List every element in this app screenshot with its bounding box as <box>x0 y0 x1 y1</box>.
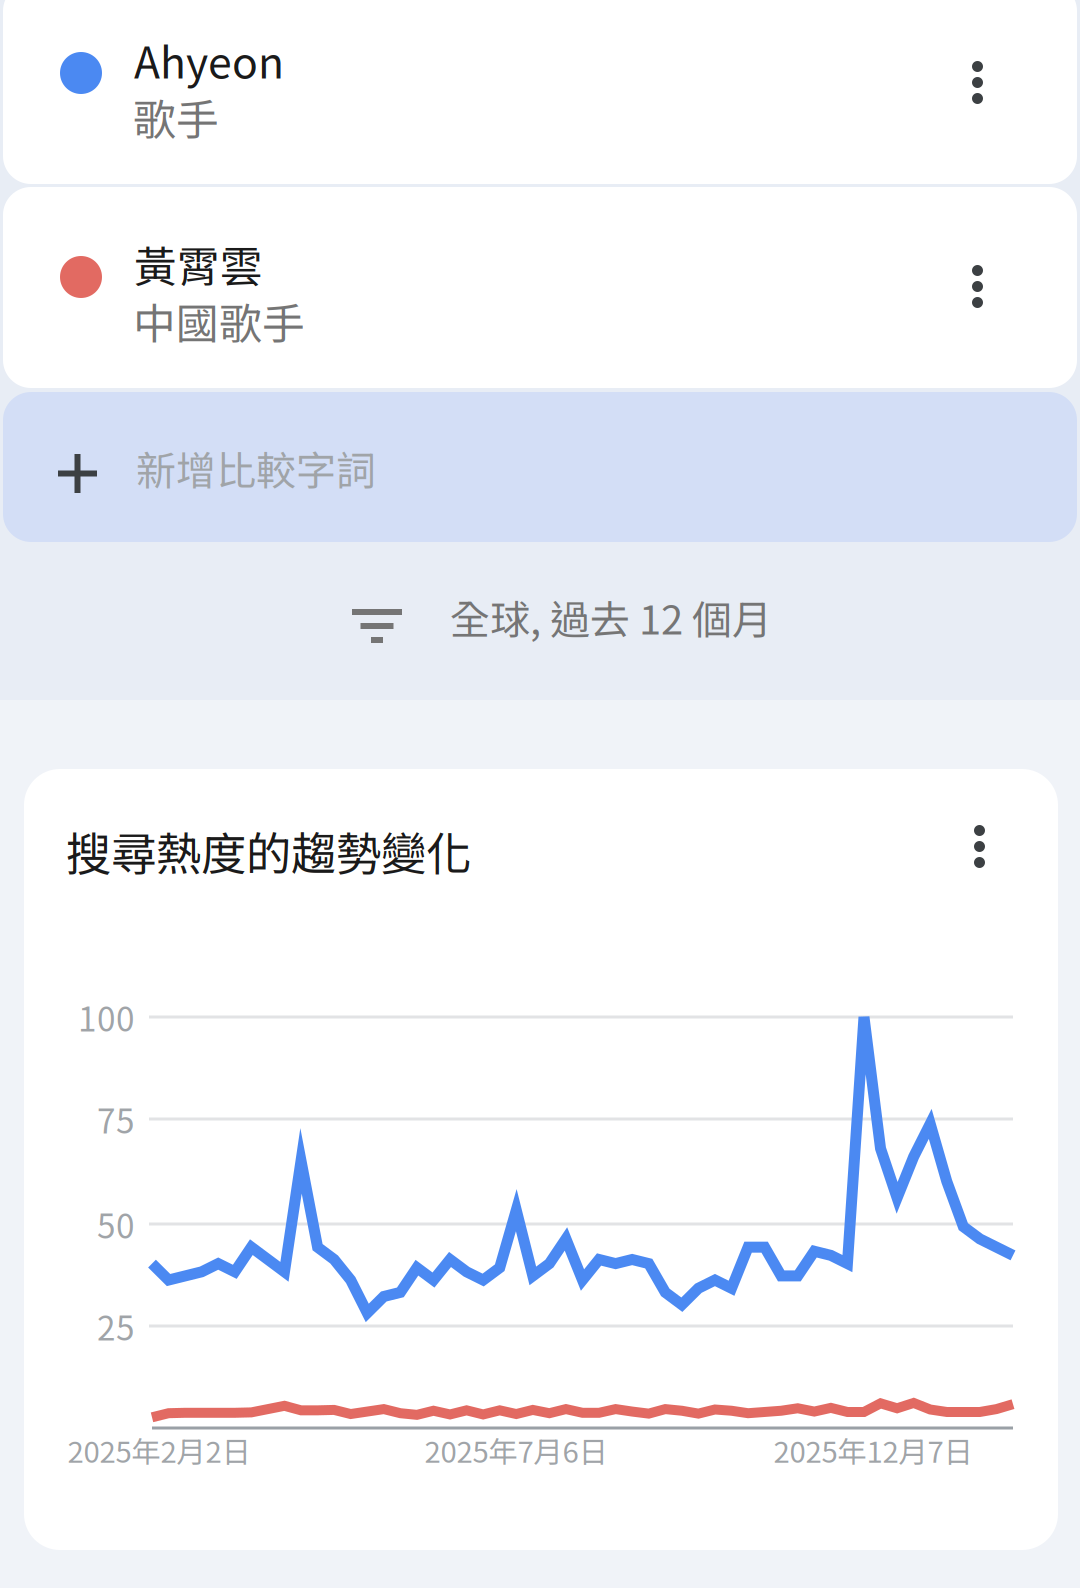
staticText: 2025年12月7日 <box>773 1429 972 1471</box>
staticText: 25 <box>97 1302 135 1350</box>
staticText: 100 <box>78 993 135 1041</box>
staticText: 黃霄雲 <box>134 233 263 295</box>
button[interactable]: 全球, 過去 12 個月 <box>352 565 772 685</box>
button[interactable]: 更多選項 <box>974 825 985 868</box>
staticText: 新增比較字詞 <box>136 439 376 497</box>
staticText: 50 <box>97 1200 135 1248</box>
staticText: 2025年7月6日 <box>424 1429 607 1471</box>
staticText: 2025年2月2日 <box>67 1429 250 1471</box>
button[interactable]: 黃霄雲 <box>3 187 1077 388</box>
staticText: 中國歌手 <box>133 290 305 352</box>
staticText: Ahyeon <box>134 29 284 91</box>
staticText: 搜尋熱度的趨勢變化 <box>66 818 471 884</box>
staticText: 全球, 過去 12 個月 <box>450 588 772 646</box>
staticText: 75 <box>97 1095 135 1143</box>
button[interactable]: 新增比較字詞 <box>3 392 1077 542</box>
staticText: 歌手 <box>133 86 219 148</box>
button[interactable]: Ahyeon <box>3 0 1077 184</box>
